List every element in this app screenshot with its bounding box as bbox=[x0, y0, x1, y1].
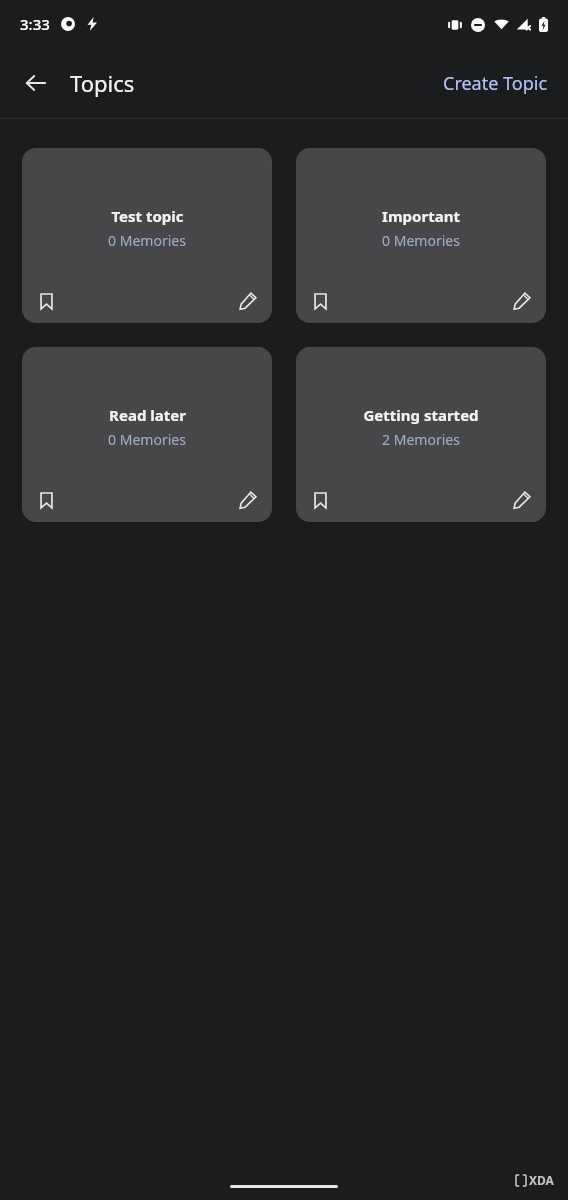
button[interactable]: Getting started bbox=[296, 347, 546, 522]
staticText: Create Topic bbox=[443, 71, 548, 96]
button[interactable]: Edit bbox=[504, 283, 540, 319]
button[interactable]: Bookmark bbox=[302, 283, 338, 319]
button[interactable]: Read later bbox=[22, 347, 272, 522]
staticText: 0 Memories bbox=[382, 231, 460, 250]
staticText: Test topic bbox=[111, 206, 184, 226]
button[interactable]: Edit bbox=[504, 482, 540, 518]
staticText: Important bbox=[382, 206, 460, 226]
staticText: Topics bbox=[70, 68, 135, 98]
button[interactable]: Bookmark bbox=[28, 482, 64, 518]
button[interactable]: Edit bbox=[230, 482, 266, 518]
staticText: 0 Memories bbox=[108, 231, 186, 250]
button[interactable]: Bookmark bbox=[28, 283, 64, 319]
staticText: XDA bbox=[529, 1172, 554, 1188]
staticText: 3:33 bbox=[20, 14, 50, 34]
staticText: Getting started bbox=[363, 405, 479, 425]
staticText: 0 Memories bbox=[108, 430, 186, 449]
button[interactable]: Bookmark bbox=[302, 482, 338, 518]
button[interactable]: Edit bbox=[230, 283, 266, 319]
button[interactable]: Create Topic bbox=[431, 63, 560, 104]
staticText: Read later bbox=[109, 405, 186, 425]
button[interactable]: Back bbox=[14, 61, 58, 105]
button[interactable]: Important bbox=[296, 148, 546, 323]
button[interactable]: Test topic bbox=[22, 148, 272, 323]
staticText: 2 Memories bbox=[382, 430, 460, 449]
